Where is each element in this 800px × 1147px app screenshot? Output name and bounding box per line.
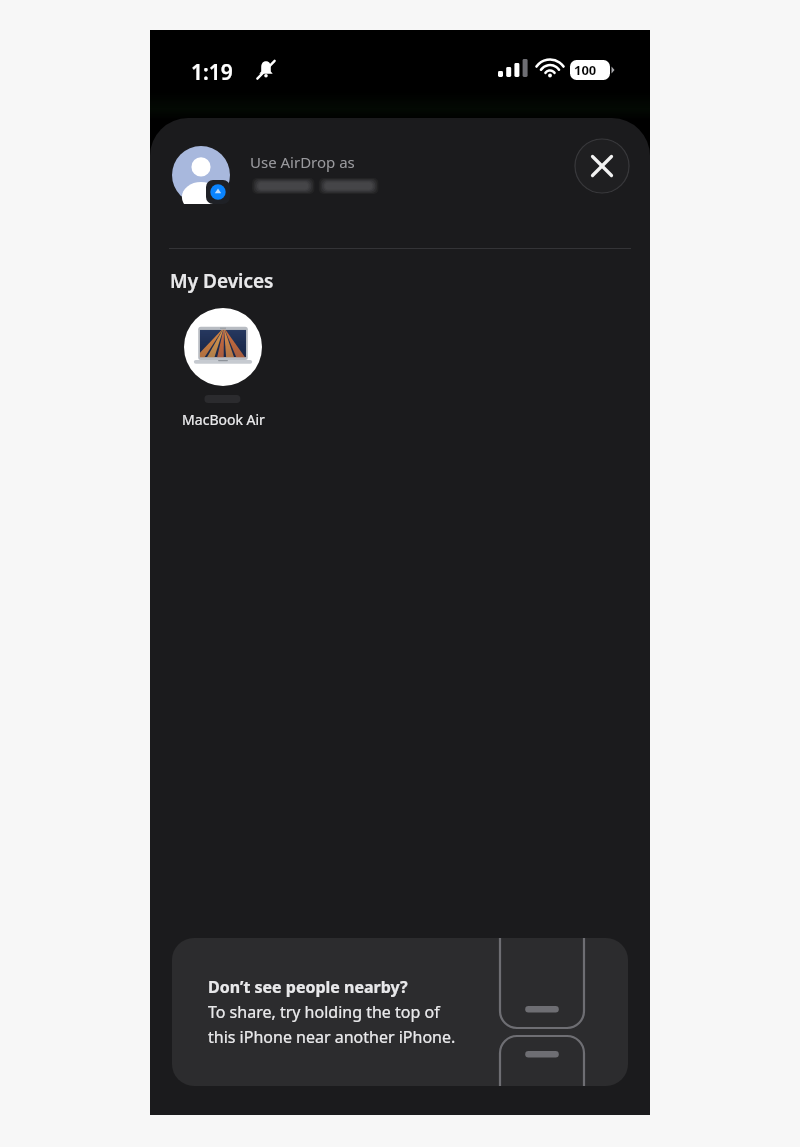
staticText: MacBook Air [182, 410, 265, 429]
staticText: this iPhone near another iPhone. [208, 1026, 456, 1048]
other: Silent mode [254, 58, 278, 82]
staticText: Use AirDrop as [250, 152, 355, 172]
staticText: Don’t see people nearby? [208, 976, 408, 998]
button[interactable]: MacBook Air [164, 308, 282, 429]
staticText: My Devices [170, 268, 274, 294]
button[interactable]: Close [574, 138, 630, 194]
button[interactable] [172, 938, 628, 1086]
staticText: 1:19 [191, 58, 233, 87]
staticText: To share, try holding the top of [208, 1001, 440, 1023]
staticText: 100 [574, 61, 597, 79]
